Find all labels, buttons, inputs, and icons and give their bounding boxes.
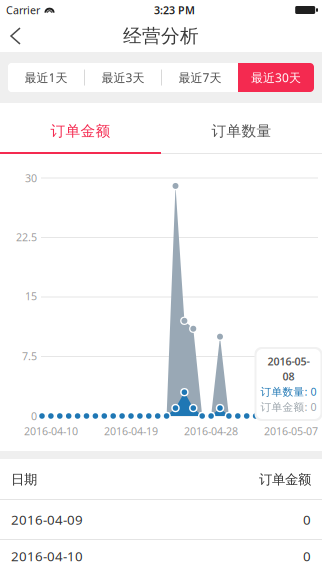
staticText: 2016-05- — [267, 354, 309, 368]
staticText: 日期 — [11, 471, 37, 488]
staticText: 订单金额: 0 — [260, 400, 316, 414]
staticText: Carrier — [6, 3, 40, 17]
staticText: 最近3天 — [101, 69, 144, 85]
button[interactable]: 最近7天 — [162, 63, 238, 92]
staticText: 2016-04-10 — [24, 424, 78, 438]
staticText: 订单金额 — [50, 122, 110, 140]
staticText: 2016-04-09 — [11, 511, 83, 528]
staticText: 30 — [25, 171, 37, 185]
staticText: 2016-04-10 — [11, 547, 83, 565]
staticText: 2016-05-07 — [264, 424, 318, 438]
staticText: 15 — [25, 289, 37, 303]
staticText: 订单金额 — [259, 471, 311, 488]
staticText: 0 — [31, 409, 37, 423]
staticText: 最近30天 — [251, 69, 301, 85]
button[interactable]: 订单数量 — [161, 110, 322, 152]
button[interactable]: 订单金额 — [0, 110, 161, 152]
button[interactable]: Back — [0, 21, 31, 51]
staticText: 订单数量: 0 — [260, 384, 316, 399]
staticText: 7.5 — [22, 349, 37, 363]
staticText: 2016-04-19 — [104, 424, 158, 438]
staticText: 0 — [303, 547, 311, 565]
staticText: 2016-04-28 — [184, 424, 238, 438]
button[interactable]: 最近30天 — [238, 63, 314, 92]
staticText: 3:23 PM — [154, 3, 195, 17]
button[interactable]: 最近3天 — [85, 63, 161, 92]
button[interactable]: 最近1天 — [8, 63, 84, 92]
staticText: 22.5 — [16, 230, 37, 244]
staticText: 08 — [282, 369, 294, 383]
staticText: 经营分析 — [123, 24, 199, 47]
staticText: 最近1天 — [24, 69, 67, 85]
staticText: 订单数量 — [211, 122, 271, 140]
staticText: 最近7天 — [178, 69, 221, 85]
staticText: 0 — [303, 511, 311, 528]
